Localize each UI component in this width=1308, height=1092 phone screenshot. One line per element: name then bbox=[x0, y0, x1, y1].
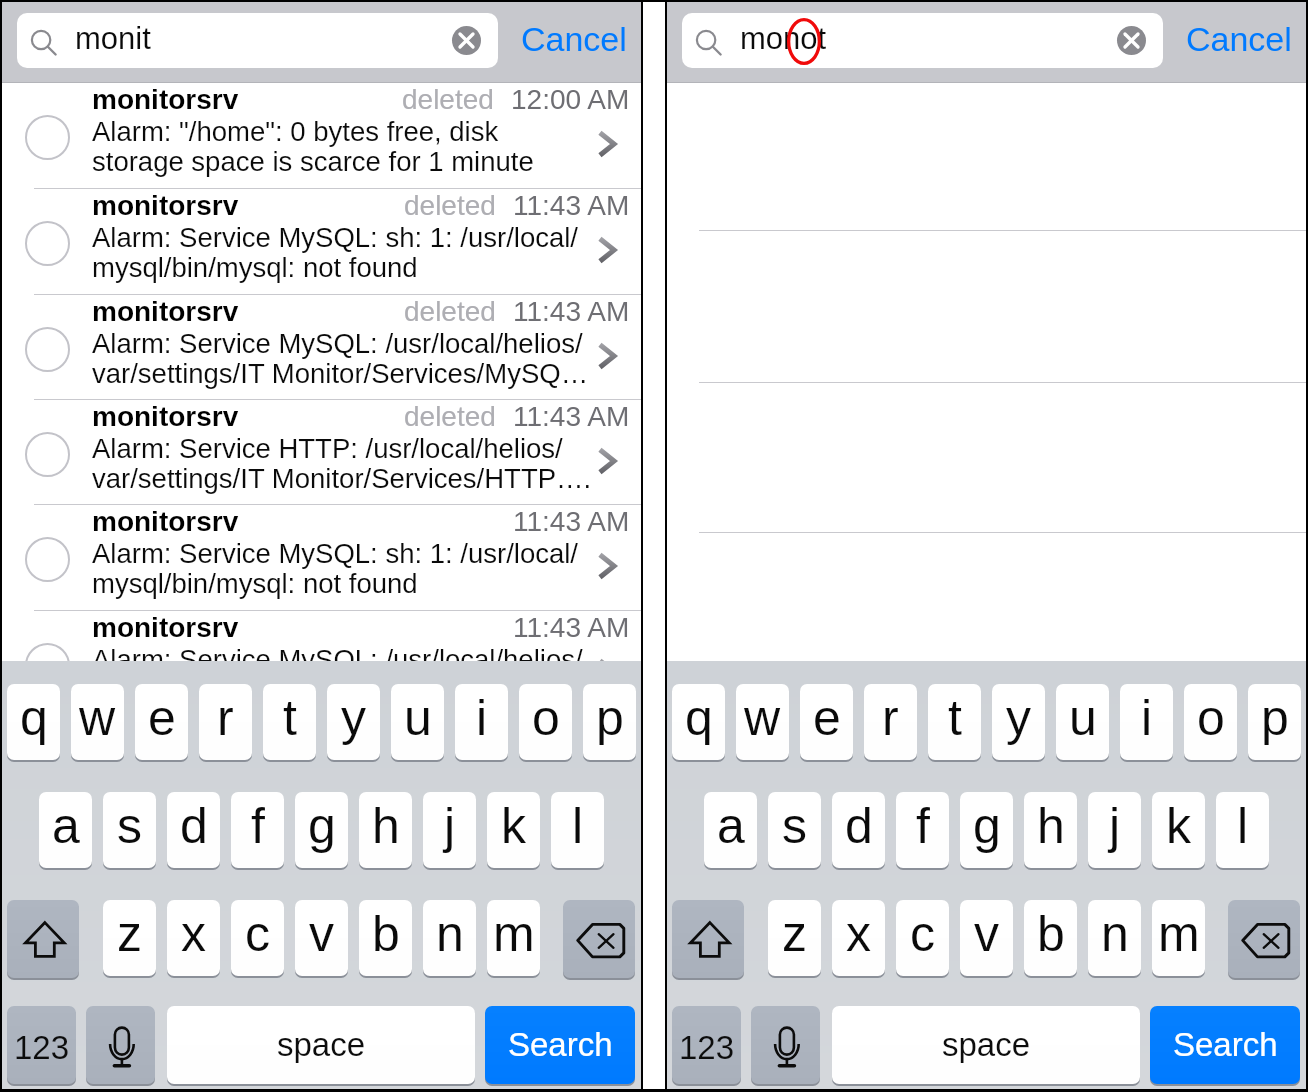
button[interactable]: d bbox=[167, 792, 220, 868]
button[interactable]: r bbox=[199, 684, 252, 760]
button[interactable]: Clear search text bbox=[1117, 26, 1146, 55]
button[interactable]: 123 bbox=[7, 1006, 76, 1084]
button[interactable]: monitorsrv bbox=[2, 294, 641, 400]
staticText: z bbox=[782, 906, 807, 962]
button[interactable]: g bbox=[295, 792, 348, 868]
staticText: space bbox=[277, 1026, 366, 1063]
button[interactable]: t bbox=[928, 684, 981, 760]
button[interactable]: space bbox=[832, 1006, 1140, 1084]
button[interactable]: d bbox=[832, 792, 885, 868]
button[interactable]: Backspace bbox=[1228, 900, 1300, 978]
button[interactable]: o bbox=[519, 684, 572, 760]
button[interactable]: m bbox=[1152, 900, 1205, 976]
button[interactable]: u bbox=[391, 684, 444, 760]
button[interactable]: a bbox=[704, 792, 757, 868]
button[interactable]: y bbox=[327, 684, 380, 760]
button[interactable]: Search bbox=[1150, 1006, 1300, 1084]
button[interactable]: i bbox=[1120, 684, 1173, 760]
button[interactable]: b bbox=[359, 900, 412, 976]
button[interactable]: z bbox=[103, 900, 156, 976]
staticText: Alarm: "/home": 0 bytes free, disk stora… bbox=[92, 116, 612, 177]
button[interactable]: monitorsrv bbox=[2, 610, 641, 716]
button[interactable]: j bbox=[1088, 792, 1141, 868]
staticText: g bbox=[973, 798, 1001, 854]
button[interactable]: j bbox=[423, 792, 476, 868]
staticText: r bbox=[882, 690, 899, 746]
staticText: r bbox=[217, 690, 234, 746]
button[interactable]: p bbox=[1248, 684, 1301, 760]
button[interactable]: Shift bbox=[672, 900, 744, 978]
button[interactable]: f bbox=[896, 792, 949, 868]
button[interactable]: l bbox=[1216, 792, 1269, 868]
button[interactable]: a bbox=[39, 792, 92, 868]
staticText: monitorsrv bbox=[92, 401, 239, 432]
button[interactable]: c bbox=[231, 900, 284, 976]
button[interactable]: w bbox=[71, 684, 124, 760]
staticText: monitorsrv bbox=[92, 296, 239, 327]
button[interactable]: Shift bbox=[7, 900, 79, 978]
button[interactable]: x bbox=[832, 900, 885, 976]
staticText: monitorsrv bbox=[92, 612, 239, 643]
button[interactable]: y bbox=[992, 684, 1045, 760]
button[interactable]: w bbox=[736, 684, 789, 760]
button[interactable]: Search bbox=[485, 1006, 635, 1084]
button[interactable]: q bbox=[7, 684, 60, 760]
button[interactable]: e bbox=[800, 684, 853, 760]
button[interactable]: i bbox=[455, 684, 508, 760]
button[interactable]: k bbox=[1152, 792, 1205, 868]
button[interactable]: Cancel bbox=[510, 2, 634, 83]
staticText: g bbox=[308, 798, 336, 854]
button[interactable]: x bbox=[167, 900, 220, 976]
button[interactable]: f bbox=[231, 792, 284, 868]
button[interactable]: s bbox=[103, 792, 156, 868]
button[interactable]: e bbox=[135, 684, 188, 760]
staticText: m bbox=[493, 906, 535, 962]
staticText: 11:43 AM bbox=[513, 506, 630, 537]
button[interactable]: Cancel bbox=[1175, 2, 1299, 83]
button[interactable]: z bbox=[768, 900, 821, 976]
button[interactable]: h bbox=[359, 792, 412, 868]
button[interactable]: 123 bbox=[672, 1006, 741, 1084]
button[interactable]: r bbox=[864, 684, 917, 760]
button[interactable]: k bbox=[487, 792, 540, 868]
button[interactable]: u bbox=[1056, 684, 1109, 760]
button[interactable]: v bbox=[960, 900, 1013, 976]
staticText: p bbox=[596, 690, 624, 746]
button[interactable]: l bbox=[551, 792, 604, 868]
button[interactable]: t bbox=[263, 684, 316, 760]
button[interactable]: q bbox=[672, 684, 725, 760]
button[interactable]: Dictation bbox=[86, 1006, 155, 1084]
button[interactable]: m bbox=[487, 900, 540, 976]
button[interactable]: g bbox=[960, 792, 1013, 868]
button[interactable]: space bbox=[167, 1006, 475, 1084]
button[interactable]: b bbox=[1024, 900, 1077, 976]
button[interactable]: s bbox=[768, 792, 821, 868]
staticText: c bbox=[245, 906, 270, 962]
staticText: 11:43 AM bbox=[513, 190, 630, 221]
button[interactable]: Backspace bbox=[563, 900, 635, 978]
staticText: Alarm: Service MySQL: /usr/local/helios/… bbox=[92, 644, 612, 705]
button[interactable]: monot bbox=[682, 13, 1163, 68]
button[interactable]: h bbox=[1024, 792, 1077, 868]
staticText: z bbox=[117, 906, 142, 962]
staticText: 12:00 AM bbox=[511, 84, 630, 115]
button[interactable]: o bbox=[1184, 684, 1237, 760]
button[interactable]: Dictation bbox=[751, 1006, 820, 1084]
button[interactable]: p bbox=[583, 684, 636, 760]
button[interactable]: monitorsrv bbox=[2, 399, 641, 505]
staticText: k bbox=[1166, 798, 1191, 854]
button[interactable]: n bbox=[423, 900, 476, 976]
button[interactable]: monitorsrv bbox=[2, 504, 641, 610]
button[interactable]: monit bbox=[17, 13, 498, 68]
button[interactable]: monitorsrv bbox=[2, 83, 641, 188]
button[interactable]: Clear search text bbox=[452, 26, 481, 55]
button[interactable]: n bbox=[1088, 900, 1141, 976]
button[interactable]: c bbox=[896, 900, 949, 976]
button[interactable]: monitorsrv bbox=[2, 188, 641, 294]
staticText: u bbox=[404, 690, 432, 746]
staticText: e bbox=[148, 690, 176, 746]
staticText: p bbox=[1261, 690, 1289, 746]
button[interactable]: v bbox=[295, 900, 348, 976]
staticText: monitorsrv bbox=[92, 506, 239, 537]
staticText: c bbox=[910, 906, 935, 962]
